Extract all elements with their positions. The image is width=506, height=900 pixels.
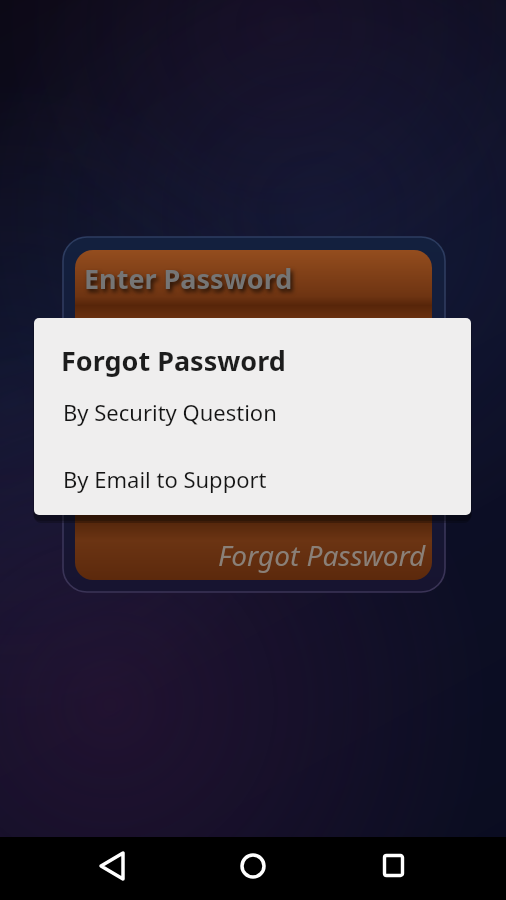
staticText: Forgot Password (61, 342, 286, 379)
button[interactable]: By Security Question (34, 379, 471, 445)
button[interactable] (89, 837, 137, 895)
button[interactable] (370, 837, 418, 895)
staticText: By Email to Support (63, 464, 267, 494)
staticText: By Security Question (63, 397, 277, 427)
staticText: Enter Password (84, 260, 293, 297)
staticText: Forgot Password (218, 536, 426, 574)
button[interactable]: By Email to Support (34, 446, 471, 512)
button[interactable]: Forgot Password (206, 534, 426, 576)
button[interactable] (75, 250, 432, 580)
button[interactable] (229, 837, 277, 895)
